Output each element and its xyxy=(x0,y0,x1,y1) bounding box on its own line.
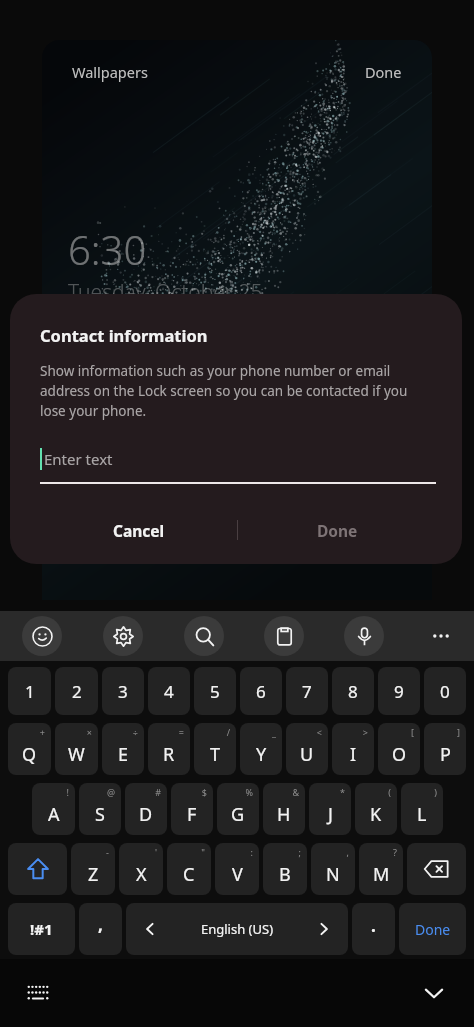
staticText: U xyxy=(300,742,314,767)
staticText: F xyxy=(187,802,197,827)
staticText: , xyxy=(98,913,103,936)
button[interactable]: Done xyxy=(399,903,466,955)
staticText: " xyxy=(201,846,205,858)
staticText: . xyxy=(371,914,376,937)
button[interactable]: _ xyxy=(240,723,282,775)
staticText: E xyxy=(118,742,129,767)
button[interactable]: Change keyboard xyxy=(20,975,56,1011)
staticText: A xyxy=(48,802,60,827)
button[interactable]: Done xyxy=(365,62,402,82)
staticText: 4 xyxy=(164,680,174,703)
staticText: !#1 xyxy=(30,919,53,939)
staticText: J xyxy=(328,802,333,827)
staticText: _ xyxy=(272,726,276,738)
button[interactable]: ; xyxy=(263,843,307,895)
button[interactable]: Settings xyxy=(103,616,143,656)
button[interactable]: 0 xyxy=(424,667,466,715)
button[interactable]: Emoji xyxy=(22,616,62,656)
button[interactable]: < xyxy=(286,723,328,775)
button[interactable]: 4 xyxy=(148,667,190,715)
button[interactable]: ! xyxy=(32,783,75,835)
button[interactable]: ÷ xyxy=(102,723,144,775)
button[interactable]: ? xyxy=(359,843,403,895)
button[interactable]: & xyxy=(263,783,305,835)
button[interactable]: @ xyxy=(79,783,121,835)
button[interactable]: " xyxy=(167,843,211,895)
button[interactable]: 2 xyxy=(55,667,98,715)
button[interactable]: [ xyxy=(378,723,420,775)
button[interactable]: × xyxy=(55,723,98,775)
button[interactable]: 1 xyxy=(8,667,51,715)
staticText: Y xyxy=(256,742,267,767)
button[interactable]: ] xyxy=(424,723,466,775)
staticText: & xyxy=(292,786,299,798)
button[interactable]: # xyxy=(125,783,167,835)
staticText: English (US) xyxy=(201,920,274,938)
staticText: 6 xyxy=(256,680,266,703)
staticText: 2 xyxy=(72,680,82,703)
button[interactable]: = xyxy=(148,723,190,775)
staticText: B xyxy=(279,862,291,887)
button[interactable]: 6 xyxy=(240,667,282,715)
button[interactable]: * xyxy=(309,783,351,835)
button[interactable]: , xyxy=(79,903,122,955)
button[interactable]: - xyxy=(71,843,115,895)
button[interactable]: Clipboard xyxy=(264,616,304,656)
button[interactable]: 3 xyxy=(102,667,144,715)
staticText: $ xyxy=(201,786,207,798)
staticText: 1 xyxy=(25,680,35,703)
button[interactable]: ( xyxy=(355,783,397,835)
button[interactable]: 5 xyxy=(194,667,236,715)
staticText: O xyxy=(392,742,407,767)
button[interactable]: : xyxy=(215,843,259,895)
button[interactable]: 9 xyxy=(378,667,420,715)
staticText: 6:30 xyxy=(68,222,147,276)
staticText: @ xyxy=(106,786,115,798)
button[interactable]: Shift xyxy=(8,843,67,895)
staticText: K xyxy=(370,802,382,827)
staticText: ' xyxy=(154,846,157,858)
button[interactable]: Cancel xyxy=(40,510,237,550)
button[interactable]: $ xyxy=(171,783,213,835)
button[interactable]: Done xyxy=(238,510,436,550)
staticText: % xyxy=(245,786,253,798)
staticText: D xyxy=(139,802,153,827)
button[interactable]: / xyxy=(194,723,236,775)
button[interactable]: ' xyxy=(119,843,163,895)
staticText: = xyxy=(178,726,184,738)
staticText: < xyxy=(316,726,322,738)
button[interactable]: Hide keyboard xyxy=(416,975,452,1011)
staticText: ( xyxy=(388,786,391,798)
button[interactable]: Backspace xyxy=(407,843,466,895)
button[interactable]: 7 xyxy=(286,667,328,715)
button[interactable]: , xyxy=(311,843,355,895)
button[interactable]: !#1 xyxy=(8,903,75,955)
button[interactable]: + xyxy=(8,723,51,775)
staticText: [ xyxy=(411,726,414,738)
button[interactable]: > xyxy=(332,723,374,775)
button[interactable]: 8 xyxy=(332,667,374,715)
staticText: Done xyxy=(317,520,358,541)
staticText: 0 xyxy=(440,680,450,703)
staticText: ? xyxy=(393,846,397,858)
staticText: 5 xyxy=(210,680,220,703)
button[interactable]: More options xyxy=(424,619,458,653)
staticText: ; xyxy=(298,846,301,858)
staticText: * xyxy=(340,786,345,798)
staticText: , xyxy=(346,846,349,858)
button[interactable]: % xyxy=(217,783,259,835)
staticText: ) xyxy=(434,786,437,798)
staticText: 8 xyxy=(348,680,358,703)
button[interactable]: . xyxy=(352,903,395,955)
button[interactable]: Search xyxy=(184,616,224,656)
staticText: > xyxy=(362,726,368,738)
button[interactable]: Wallpapers xyxy=(72,62,148,82)
staticText: N xyxy=(326,862,340,887)
button[interactable]: English (US) xyxy=(126,903,348,955)
staticText: ] xyxy=(457,726,460,738)
button[interactable]: Voice input xyxy=(344,616,384,656)
staticText: V xyxy=(232,862,243,887)
staticText: × xyxy=(86,726,92,738)
staticText: - xyxy=(106,846,109,858)
button[interactable]: ) xyxy=(401,783,443,835)
